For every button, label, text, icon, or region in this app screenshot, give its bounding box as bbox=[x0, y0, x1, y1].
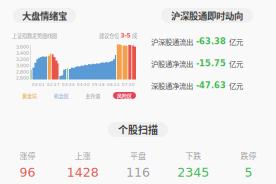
staticText: 亿元 bbox=[229, 80, 243, 91]
staticText: 平盘 bbox=[130, 150, 146, 161]
staticText: 3,200 bbox=[16, 57, 29, 62]
button[interactable]: 大盘情绪宝 bbox=[13, 8, 76, 23]
staticText: 3,000 bbox=[16, 63, 29, 68]
button[interactable]: 风险区 bbox=[113, 92, 136, 99]
staticText: 沪股通净流出 bbox=[151, 58, 193, 69]
staticText: 沪深股通即时动向 bbox=[171, 9, 243, 22]
staticText: 机会区 bbox=[54, 92, 69, 99]
staticText: 成 bbox=[132, 32, 137, 39]
staticText: 04-20 bbox=[77, 82, 90, 87]
staticText: 深股通净流出 bbox=[151, 80, 193, 91]
staticText: 2,600 bbox=[16, 75, 29, 81]
staticText: 1428 bbox=[67, 165, 99, 180]
staticText: 主升浪 bbox=[85, 92, 100, 99]
staticText: 亿元 bbox=[229, 58, 243, 69]
button[interactable]: 沪深股通即时动向 bbox=[161, 8, 253, 23]
button[interactable]: 上涨 bbox=[55, 151, 110, 179]
staticText: 05-18 bbox=[92, 82, 105, 87]
staticText: 个股扫描 bbox=[118, 122, 158, 137]
button[interactable]: 主升浪 bbox=[81, 92, 104, 99]
staticText: 3-5 bbox=[120, 32, 130, 39]
staticText: 大盘情绪宝 bbox=[22, 9, 67, 22]
staticText: 2,800 bbox=[16, 69, 29, 74]
staticText: -47.63 bbox=[196, 81, 226, 90]
button[interactable]: 涨停 bbox=[0, 151, 55, 179]
staticText: 07-20 bbox=[122, 82, 135, 87]
staticText: 3,400 bbox=[16, 50, 29, 56]
staticText: 风险区 bbox=[117, 92, 132, 99]
staticText: 下跌 bbox=[185, 150, 201, 161]
staticText: 06-22 bbox=[107, 82, 120, 87]
button[interactable]: 机会区 bbox=[50, 92, 73, 99]
staticText: -15.75 bbox=[196, 59, 226, 68]
button[interactable]: 黄金坑 bbox=[18, 92, 41, 99]
staticText: 黄金坑 bbox=[22, 92, 37, 99]
staticText: -63.38 bbox=[196, 37, 226, 46]
staticText: 建议仓位 bbox=[99, 32, 119, 39]
staticText: 116 bbox=[126, 165, 150, 180]
staticText: 96 bbox=[20, 165, 36, 180]
staticText: 2345 bbox=[177, 165, 209, 180]
staticText: 02-01 bbox=[32, 82, 45, 87]
button[interactable]: 跌停 bbox=[221, 151, 276, 179]
staticText: 亿元 bbox=[229, 36, 243, 47]
button[interactable]: 平盘 bbox=[110, 151, 166, 179]
staticText: 沪深股通流出 bbox=[151, 36, 193, 47]
staticText: 上证指数走势曲线图 bbox=[12, 32, 57, 39]
staticText: 03-24 bbox=[62, 82, 75, 87]
staticText: 跌停 bbox=[240, 150, 256, 161]
staticText: 3,600 bbox=[16, 44, 29, 50]
staticText: 上涨 bbox=[75, 150, 91, 161]
button[interactable]: 下跌 bbox=[166, 151, 221, 179]
staticText: 02-27 bbox=[47, 82, 60, 87]
button[interactable]: 个股扫描 bbox=[108, 122, 168, 137]
staticText: 涨停 bbox=[20, 150, 36, 161]
staticText: 5 bbox=[244, 165, 252, 180]
